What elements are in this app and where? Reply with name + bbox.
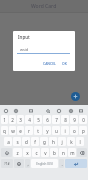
staticText: n (62, 150, 65, 156)
staticText: English (US) (36, 162, 53, 166)
button[interactable]: w (9, 126, 16, 135)
staticText: 7 (55, 117, 58, 123)
button[interactable]: 9 (70, 115, 78, 124)
button[interactable]: p (79, 126, 87, 135)
button[interactable]: y (43, 126, 51, 135)
staticText: u (55, 128, 58, 134)
staticText: q (3, 128, 6, 134)
button[interactable]: 6 (43, 115, 51, 124)
button[interactable]: q (1, 126, 8, 135)
staticText: 9 (73, 117, 76, 123)
staticText: 1 (3, 117, 6, 123)
button[interactable]: c (32, 148, 40, 157)
staticText: 5 (37, 117, 40, 123)
button[interactable]: 0 (79, 115, 87, 124)
staticText: e (19, 128, 22, 134)
staticText: Input (18, 34, 30, 40)
button[interactable]: Enter (65, 159, 87, 168)
button[interactable]: 8 (61, 115, 69, 124)
staticText: l (79, 139, 81, 145)
button[interactable]: b (50, 148, 58, 157)
button[interactable]: a (4, 137, 12, 146)
button[interactable]: Voice input (67, 107, 75, 115)
staticText: 4 (28, 117, 31, 123)
button[interactable]: d (22, 137, 30, 146)
staticText: 3 (19, 117, 22, 123)
staticText: ?1# (4, 162, 10, 166)
staticText: OK (62, 61, 67, 66)
button[interactable]: x (23, 148, 31, 157)
staticText: r (28, 128, 30, 134)
button[interactable]: l (76, 137, 84, 146)
staticText: z (16, 150, 19, 156)
staticText: 6 (46, 117, 49, 123)
button[interactable]: e (17, 126, 24, 135)
button[interactable]: Word Card (0, 0, 88, 12)
staticText: t (37, 128, 39, 134)
button[interactable]: 5 (34, 115, 42, 124)
button[interactable]: Search (55, 107, 63, 115)
button[interactable]: u (52, 126, 60, 135)
button[interactable]: More (77, 107, 85, 115)
staticText: 8 (64, 117, 67, 123)
staticText: Word Card (31, 3, 57, 10)
staticText: i (64, 128, 66, 134)
staticText: x (26, 150, 29, 156)
button[interactable]: s (13, 137, 21, 146)
button[interactable]: v (41, 148, 49, 157)
button[interactable]: Add word (71, 92, 80, 101)
staticText: 0 (82, 117, 85, 123)
staticText: f (34, 139, 36, 145)
button[interactable]: r (25, 126, 33, 135)
button[interactable]: Emoji (2, 107, 10, 115)
staticText: wsid (20, 47, 29, 52)
button[interactable]: i (61, 126, 69, 135)
button[interactable]: Backspace (77, 148, 87, 157)
button[interactable]: Clipboard (44, 107, 52, 115)
staticText: 2 (11, 117, 14, 123)
button[interactable]: 4 (25, 115, 33, 124)
button[interactable]: k (67, 137, 75, 146)
staticText: m (70, 150, 75, 156)
button[interactable]: 1 (1, 115, 8, 124)
button[interactable]: , (25, 159, 30, 168)
button[interactable]: OK (60, 59, 69, 68)
button[interactable]: Emoji (14, 159, 24, 168)
button[interactable]: z (13, 148, 22, 157)
button[interactable]: . (59, 159, 64, 168)
button[interactable]: CANCEL (41, 59, 58, 68)
staticText: k (70, 139, 73, 145)
staticText: h (52, 139, 55, 145)
staticText: p (82, 128, 85, 134)
button[interactable]: 2 (9, 115, 16, 124)
button[interactable]: t (34, 126, 42, 135)
button[interactable]: m (68, 148, 76, 157)
staticText: c (35, 150, 38, 156)
staticText: a (7, 139, 10, 145)
staticText: , (27, 161, 29, 167)
button[interactable]: j (58, 137, 66, 146)
staticText: w (11, 128, 15, 134)
button[interactable]: h (49, 137, 57, 146)
button[interactable]: g (40, 137, 48, 146)
staticText: CANCEL (43, 61, 56, 66)
button[interactable]: n (59, 148, 67, 157)
button[interactable]: Translate (27, 107, 35, 115)
staticText: . (61, 161, 63, 167)
staticText: b (53, 150, 56, 156)
button[interactable]: ?1# (1, 159, 13, 168)
button[interactable]: Settings (12, 107, 20, 115)
staticText: o (73, 128, 76, 134)
button[interactable]: Shift (1, 148, 12, 157)
button[interactable]: o (70, 126, 78, 135)
button[interactable]: 3 (17, 115, 24, 124)
staticText: s (16, 139, 19, 145)
staticText: d (25, 139, 28, 145)
staticText: g (43, 139, 46, 145)
button[interactable]: 7 (52, 115, 60, 124)
staticText: v (44, 150, 47, 156)
button[interactable]: English (US) (31, 159, 58, 168)
button[interactable]: f (31, 137, 39, 146)
staticText: y (46, 128, 49, 134)
staticText: j (61, 139, 63, 145)
